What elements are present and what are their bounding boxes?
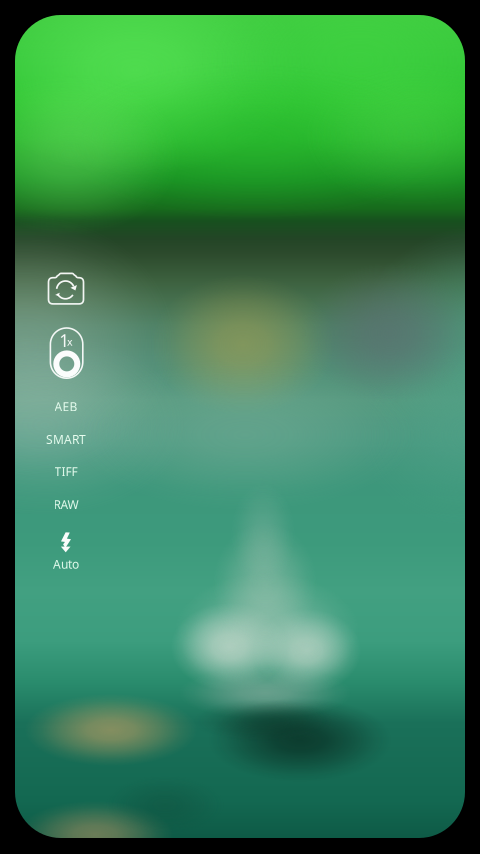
button[interactable]: TIFF [23, 457, 109, 485]
staticText: RAW [53, 496, 78, 512]
button[interactable]: RAW [23, 490, 109, 518]
staticText: AEB [54, 398, 77, 414]
staticText: SMART [46, 431, 86, 447]
staticText: 1 [59, 329, 69, 352]
button[interactable]: Flash auto [35, 529, 97, 573]
button[interactable]: Zoom 1x [46, 324, 88, 382]
button[interactable]: Switch camera [37, 266, 95, 310]
button[interactable]: SMART [23, 425, 109, 453]
staticText: Auto [53, 556, 79, 572]
button[interactable]: AEB [23, 392, 109, 420]
staticText: x [67, 334, 73, 349]
staticText: TIFF [54, 463, 77, 479]
